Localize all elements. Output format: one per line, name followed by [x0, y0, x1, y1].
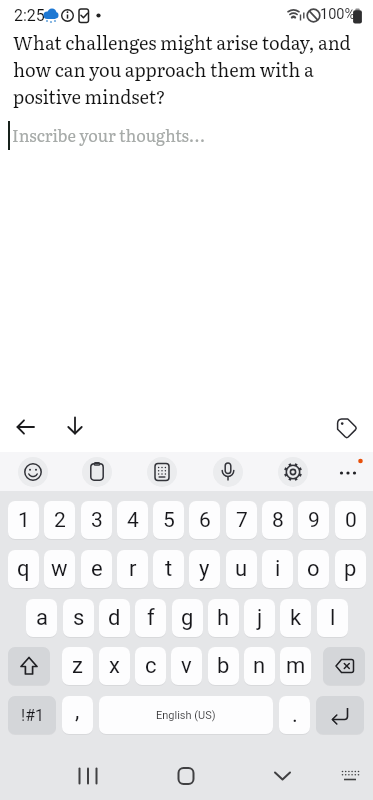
staticText: y — [199, 556, 210, 582]
button[interactable] — [57, 410, 93, 446]
button[interactable] — [260, 755, 305, 800]
button[interactable]: 1 — [8, 501, 39, 539]
button[interactable]: k — [280, 599, 311, 637]
button[interactable]: 3 — [81, 501, 112, 539]
button[interactable]: b — [208, 647, 239, 685]
button[interactable]: 4 — [117, 501, 148, 539]
button[interactable] — [147, 457, 177, 487]
staticText: English (US) — [156, 709, 216, 722]
button[interactable] — [82, 457, 112, 487]
staticText: l — [330, 605, 336, 631]
staticText: r — [129, 556, 137, 582]
staticText: o — [307, 556, 320, 582]
staticText: 8 — [272, 508, 284, 533]
button[interactable] — [18, 457, 48, 487]
button[interactable]: x — [99, 647, 130, 685]
staticText: s — [73, 605, 85, 631]
button[interactable]: English (US) — [99, 696, 273, 734]
button[interactable]: r — [117, 550, 148, 588]
button[interactable] — [164, 755, 209, 800]
button[interactable]: y — [189, 550, 220, 588]
button[interactable]: j — [244, 599, 275, 637]
button[interactable] — [66, 755, 111, 800]
button[interactable]: 5 — [153, 501, 184, 539]
button[interactable]: l — [317, 599, 348, 637]
staticText: u — [235, 556, 248, 582]
staticText: What challenges might arise today, and h… — [13, 29, 351, 110]
staticText: 3 — [91, 508, 103, 533]
staticText: j — [257, 605, 263, 631]
button[interactable]: h — [208, 599, 239, 637]
button[interactable]: d — [99, 599, 130, 637]
button[interactable]: 2 — [44, 501, 75, 539]
button[interactable]: w — [44, 550, 75, 588]
button[interactable]: v — [171, 647, 202, 685]
staticText: 2 — [54, 508, 66, 533]
staticText: !#1 — [21, 706, 44, 725]
button[interactable]: t — [153, 550, 184, 588]
staticText: v — [181, 653, 192, 679]
staticText: 9 — [308, 508, 320, 533]
staticText: 5 — [163, 508, 175, 533]
button[interactable] — [8, 410, 44, 446]
button[interactable]: e — [81, 550, 112, 588]
staticText: . — [292, 702, 298, 728]
staticText: w — [51, 556, 68, 582]
staticText: f — [147, 605, 155, 631]
staticText: m — [286, 653, 306, 679]
button[interactable]: s — [63, 599, 94, 637]
staticText: a — [36, 605, 48, 631]
staticText: z — [72, 653, 83, 679]
button[interactable]: f — [135, 599, 166, 637]
button[interactable]: z — [62, 647, 93, 685]
staticText: t — [165, 556, 173, 582]
button[interactable]: q — [8, 550, 39, 588]
button[interactable]: 6 — [189, 501, 220, 539]
button[interactable]: u — [226, 550, 257, 588]
button[interactable]: 7 — [226, 501, 257, 539]
button[interactable]: n — [244, 647, 275, 685]
button[interactable]: p — [335, 550, 366, 588]
staticText: h — [217, 605, 230, 631]
staticText: b — [217, 653, 230, 679]
button[interactable]: c — [135, 647, 166, 685]
staticText: g — [181, 605, 194, 631]
staticText: n — [253, 653, 266, 679]
staticText: 7 — [236, 508, 248, 533]
staticText: e — [91, 556, 103, 582]
button[interactable]: 8 — [262, 501, 293, 539]
staticText: p — [344, 556, 357, 582]
button[interactable]: m — [280, 647, 311, 685]
button[interactable] — [8, 647, 50, 685]
button[interactable]: , — [62, 696, 93, 734]
staticText: i — [275, 556, 281, 582]
button[interactable] — [278, 457, 308, 487]
button[interactable] — [329, 410, 365, 446]
staticText: 1 — [18, 508, 30, 533]
button[interactable] — [213, 457, 243, 487]
staticText: 4 — [127, 508, 139, 533]
staticText: 100% — [320, 6, 356, 23]
button[interactable]: i — [262, 550, 293, 588]
button[interactable]: a — [26, 599, 57, 637]
staticText: , — [75, 698, 80, 724]
staticText: 0 — [345, 508, 357, 533]
staticText: 2:25 — [14, 6, 45, 25]
button[interactable]: 9 — [298, 501, 329, 539]
button[interactable]: 0 — [335, 501, 366, 539]
button[interactable] — [316, 696, 364, 734]
button[interactable]: !#1 — [8, 696, 56, 734]
staticText: q — [17, 556, 30, 582]
staticText: Inscribe your thoughts... — [12, 123, 206, 147]
staticText: 6 — [199, 508, 211, 533]
button[interactable] — [323, 647, 365, 685]
button[interactable]: g — [172, 599, 203, 637]
staticText: k — [290, 605, 302, 631]
button[interactable]: o — [298, 550, 329, 588]
staticText: c — [145, 653, 157, 679]
button[interactable]: . — [279, 696, 310, 734]
button[interactable] — [330, 755, 370, 795]
staticText: d — [108, 605, 121, 631]
staticText: x — [109, 653, 120, 679]
